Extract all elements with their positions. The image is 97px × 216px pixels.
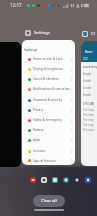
- button[interactable]: Settings app: [22, 40, 75, 165]
- staticText: Special features: [33, 159, 71, 163]
- staticText: Grade: [83, 72, 92, 76]
- staticText: Settings: [24, 47, 38, 52]
- button[interactable]: Camera: [41, 177, 47, 183]
- staticText: Battery: [33, 128, 71, 132]
- staticText: Serv: [85, 49, 93, 54]
- staticText: The requ: [83, 113, 94, 117]
- staticText: UPCOMI: [83, 102, 95, 106]
- button[interactable]: Sound & vibration: [22, 74, 75, 84]
- staticText: The requ: [83, 128, 94, 132]
- staticText: Grade: [83, 79, 92, 83]
- staticText: The requ: [83, 123, 94, 127]
- staticText: Display & brightness: [33, 67, 71, 71]
- staticText: Privacy: [33, 108, 71, 112]
- staticText: Settings: [34, 30, 50, 36]
- staticText: Apps: [33, 138, 71, 142]
- button[interactable]: Display & brightness: [22, 64, 75, 74]
- staticText: Clear all: [41, 198, 57, 204]
- button[interactable]: Clear all: [33, 195, 65, 207]
- button[interactable]: Gemini: [85, 177, 91, 183]
- staticText: workshop: [83, 65, 97, 69]
- staticText: The requ: [83, 108, 94, 112]
- staticText: Sound & vibration: [33, 77, 71, 81]
- button[interactable]: Safety & emergency: [22, 115, 75, 125]
- button[interactable]: Battery: [22, 125, 75, 135]
- button[interactable]: Password & security: [22, 95, 75, 105]
- button[interactable]: Previous app: [0, 42, 21, 167]
- staticText: Home screen & Lock screen: [33, 57, 71, 61]
- button[interactable]: Notifications & status bar: [22, 84, 75, 94]
- staticText: Safety & emergency: [33, 118, 71, 122]
- staticText: Location: [33, 149, 71, 153]
- staticText: DEC: [83, 57, 88, 61]
- button[interactable]: Privacy: [22, 105, 75, 115]
- button[interactable]: Location: [22, 146, 75, 156]
- button[interactable]: Home screen & Lock screen: [22, 54, 75, 64]
- staticText: The requ: [83, 118, 94, 122]
- staticText: Cl: [91, 31, 95, 37]
- button[interactable]: Apps: [22, 135, 75, 145]
- button[interactable]: Calculator: [52, 177, 58, 183]
- button[interactable]: Special features: [22, 156, 75, 165]
- button[interactable]: Messages: [63, 177, 69, 183]
- staticText: Notifications & status bar: [33, 87, 71, 91]
- staticText: Password & security: [33, 98, 71, 102]
- button[interactable]: Next app: [81, 41, 97, 166]
- button[interactable]: Chrome: [74, 177, 80, 183]
- staticText: Grade: [83, 86, 92, 90]
- staticText: 12:17: [10, 2, 22, 8]
- button[interactable]: YouTube: [30, 177, 36, 183]
- staticText: Grade: [83, 93, 92, 97]
